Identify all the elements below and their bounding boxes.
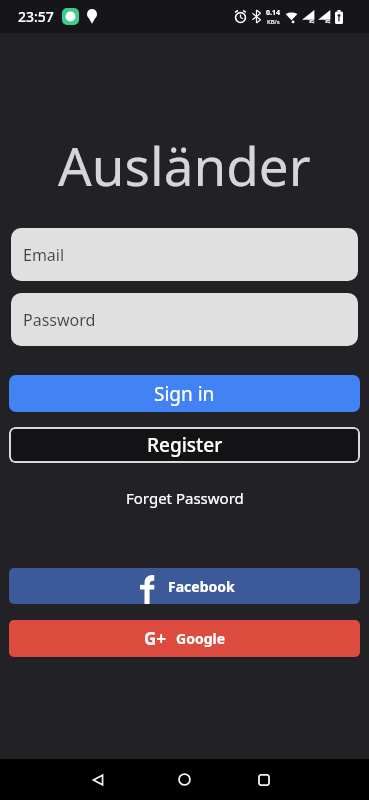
staticText: Sign in (154, 381, 215, 407)
button[interactable]: Password (11, 293, 358, 346)
staticText: Email (23, 244, 65, 266)
button[interactable]: G+ (9, 620, 360, 657)
staticText: KB/s (267, 18, 280, 26)
staticText: Ausländer (58, 129, 311, 201)
staticText: 0.14 (266, 8, 280, 18)
button[interactable]: Forget Password (126, 488, 244, 508)
button[interactable]: Register (9, 427, 360, 463)
button[interactable] (246, 759, 282, 800)
staticText: G+ (144, 627, 167, 650)
button[interactable]: Sign in (9, 375, 360, 412)
staticText: Password (23, 309, 96, 331)
staticText: Register (147, 432, 223, 458)
button[interactable] (80, 759, 116, 800)
button[interactable]: Facebook (9, 568, 360, 604)
staticText: Google (176, 629, 226, 648)
staticText: 23:57 (18, 7, 54, 26)
staticText: Facebook (168, 577, 235, 596)
button[interactable]: Email (11, 228, 358, 281)
button[interactable] (166, 759, 202, 800)
